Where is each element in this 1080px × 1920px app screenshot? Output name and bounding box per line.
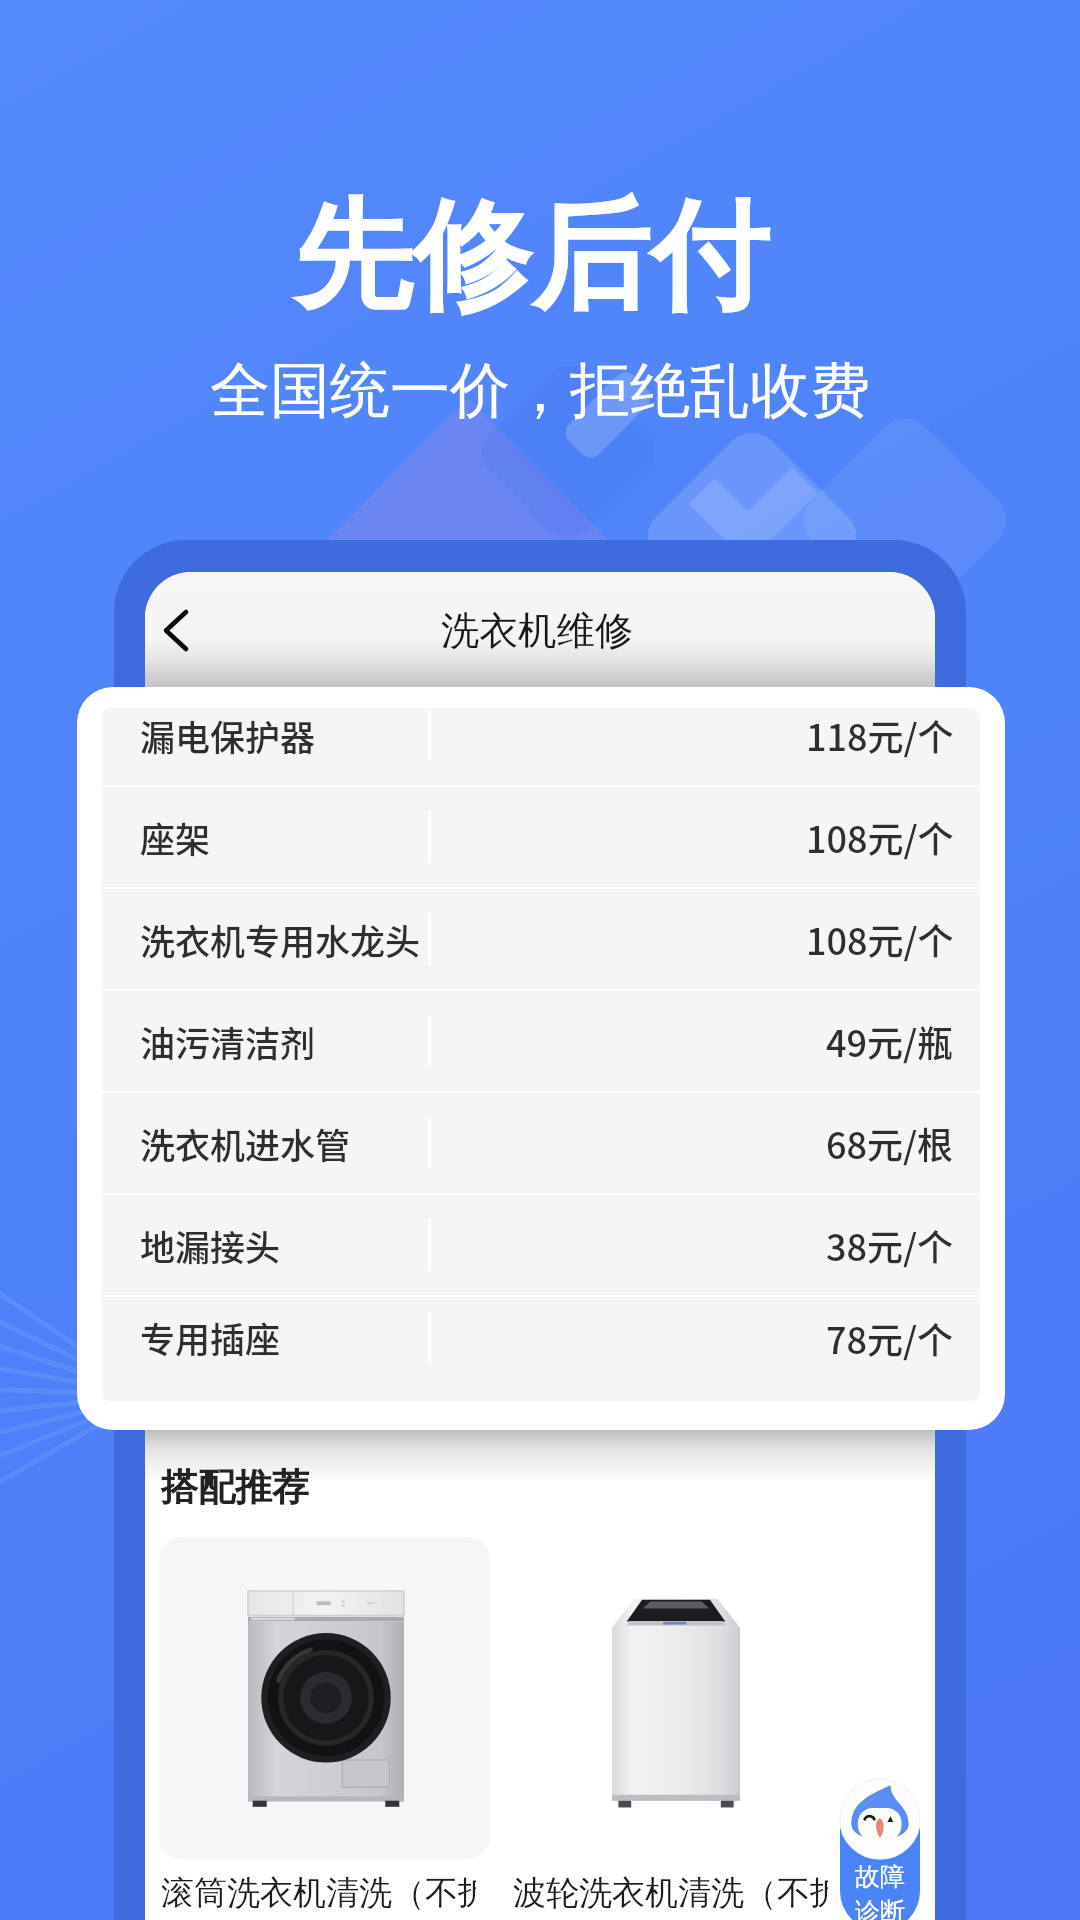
staticText: 先修后付 — [293, 182, 769, 332]
staticText: 油污清洁剂 — [140, 1016, 316, 1067]
staticText: 滚筒洗衣机清洗（不拆卸） — [161, 1872, 476, 1914]
button[interactable]: 漏电保护器 — [102, 708, 980, 785]
button[interactable]: 故障诊断 — [840, 1779, 920, 1920]
staticText: 108元/个 — [806, 913, 954, 965]
staticText: 118元/个 — [806, 709, 954, 761]
staticText: 洗衣机维修 — [441, 607, 634, 656]
staticText: 地漏接头 — [140, 1220, 281, 1271]
button[interactable]: 洗衣机进水管 — [102, 1093, 980, 1193]
button[interactable] — [159, 1537, 490, 1859]
staticText: 波轮洗衣机清洗（不拆卸） — [513, 1872, 828, 1914]
staticText: 洗衣机专用水龙头 — [140, 914, 421, 965]
staticText: 专用插座 — [140, 1312, 281, 1363]
button[interactable]: 油污清洁剂 — [102, 991, 980, 1091]
staticText: 诊断 — [855, 1896, 905, 1920]
staticText: 108元/个 — [806, 811, 954, 863]
staticText: 全国统一价，拒绝乱收费 — [210, 353, 870, 429]
staticText: 座架 — [140, 812, 211, 863]
staticText: 搭配推荐 — [161, 1464, 309, 1511]
staticText: 78元/个 — [826, 1312, 954, 1364]
staticText: 漏电保护器 — [140, 710, 316, 761]
button[interactable] — [506, 1537, 837, 1859]
staticText: 49元/瓶 — [826, 1015, 954, 1067]
staticText: 洗衣机进水管 — [140, 1118, 351, 1169]
button[interactable]: 专用插座 — [102, 1297, 980, 1378]
button[interactable]: Back — [151, 586, 227, 662]
staticText: 38元/个 — [826, 1219, 954, 1271]
staticText: 68元/根 — [826, 1117, 954, 1169]
button[interactable]: 座架 — [102, 787, 980, 887]
staticText: 故障 — [855, 1861, 905, 1892]
button[interactable]: 洗衣机专用水龙头 — [102, 889, 980, 989]
button[interactable]: 地漏接头 — [102, 1195, 980, 1295]
